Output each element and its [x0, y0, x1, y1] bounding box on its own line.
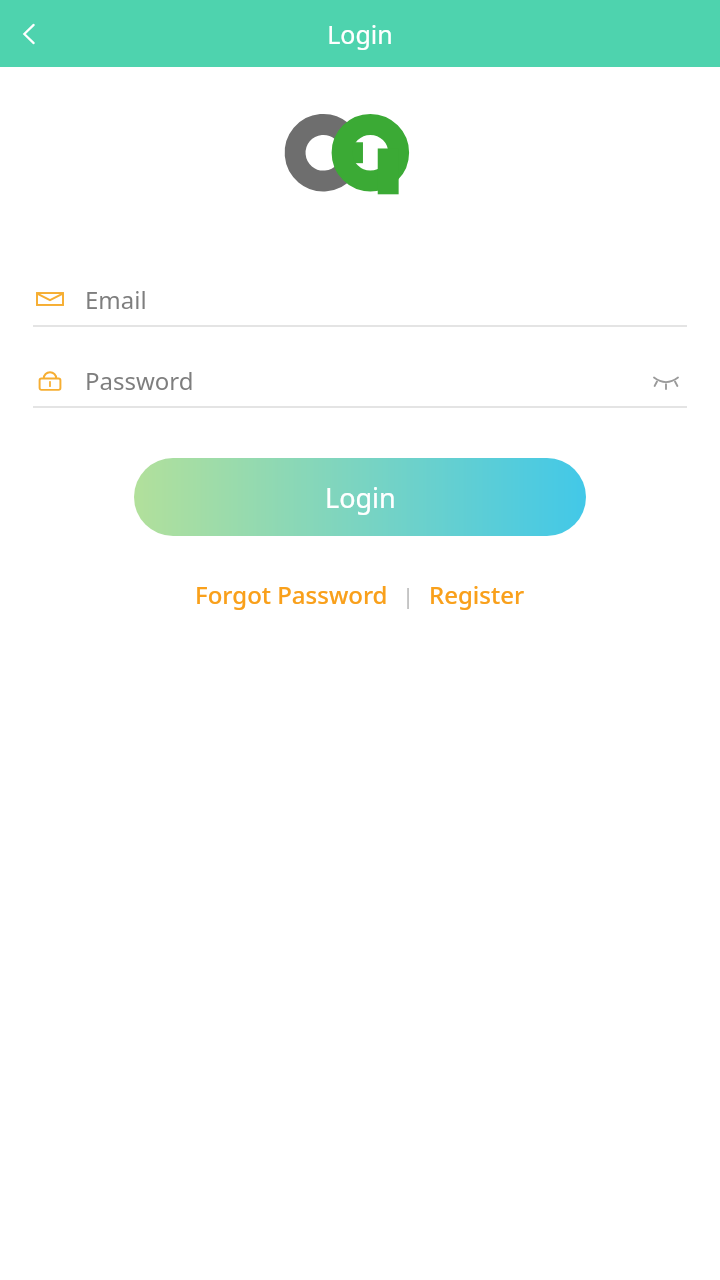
staticText: |: [402, 580, 415, 610]
staticText: Register: [429, 578, 525, 611]
staticText: Email: [85, 283, 147, 316]
staticText: Login: [327, 17, 393, 51]
staticText: Login: [325, 479, 396, 516]
button[interactable]: Forgot Password: [191, 572, 392, 617]
staticText: Forgot Password: [195, 578, 388, 611]
button[interactable]: Login: [134, 458, 586, 536]
button[interactable]: Email: [33, 273, 687, 327]
button[interactable]: Password: [33, 354, 687, 408]
button[interactable]: Show password: [645, 359, 687, 401]
button[interactable]: Register: [425, 572, 529, 617]
staticText: Password: [85, 364, 194, 397]
button[interactable]: Back: [0, 5, 58, 63]
